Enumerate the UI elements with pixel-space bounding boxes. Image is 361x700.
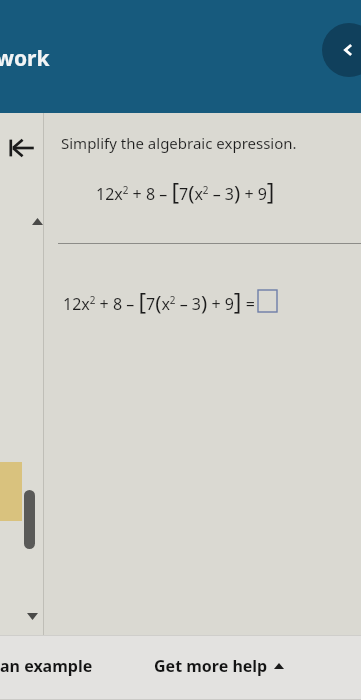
staticText: Get more help: [154, 655, 268, 677]
staticText: work: [0, 44, 50, 73]
staticText: 12x2 + 8 – [7(x2 – 3) + 9]: [96, 175, 275, 207]
button[interactable]: an example: [0, 651, 99, 681]
button[interactable]: Scroll up: [26, 212, 48, 230]
button[interactable]: Previous step: [2, 131, 42, 165]
staticText: Simplify the algebraic expression.: [61, 133, 297, 153]
staticText: an example: [0, 655, 93, 677]
button[interactable]: Scroll down: [21, 607, 43, 625]
button[interactable]: Back: [322, 23, 361, 77]
staticText: 12x2 + 8 – [7(x2 – 3) + 9] =: [63, 285, 255, 317]
button[interactable]: Get more help: [148, 651, 290, 681]
button[interactable]: Scrollbar: [24, 490, 35, 549]
button[interactable]: Answer input box: [258, 290, 277, 312]
